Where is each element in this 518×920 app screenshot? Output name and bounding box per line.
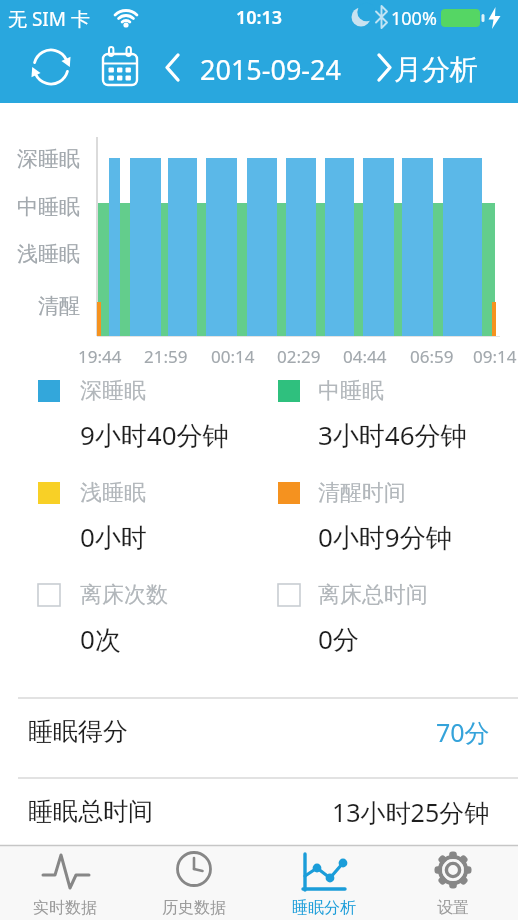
button[interactable] bbox=[130, 845, 260, 920]
staticText: 睡眠得分 bbox=[28, 716, 128, 747]
staticText: 离床总时间 bbox=[318, 581, 428, 609]
button[interactable]: 睡眠总时间 bbox=[0, 778, 518, 845]
button[interactable] bbox=[389, 845, 518, 920]
staticText: 浅睡眠 bbox=[80, 479, 146, 507]
staticText: 设置 bbox=[437, 898, 469, 918]
staticText: 100% bbox=[391, 6, 437, 31]
staticText: 0小时9分钟 bbox=[318, 519, 452, 555]
staticText: 清醒 bbox=[38, 293, 80, 319]
staticText: 02:29 bbox=[277, 345, 321, 368]
staticText: 浅睡眠 bbox=[17, 241, 80, 267]
staticText: 3小时46分钟 bbox=[318, 417, 467, 453]
staticText: 70分 bbox=[436, 715, 490, 749]
staticText: 历史数据 bbox=[162, 898, 226, 918]
staticText: 实时数据 bbox=[33, 898, 97, 918]
staticText: 深睡眠 bbox=[17, 146, 80, 172]
staticText: 06:59 bbox=[410, 345, 454, 368]
staticText: 9小时40分钟 bbox=[80, 417, 229, 453]
staticText: 2015-09-24 bbox=[200, 51, 341, 88]
button[interactable] bbox=[370, 46, 404, 90]
button[interactable] bbox=[28, 46, 72, 90]
staticText: 睡眠分析 bbox=[292, 898, 356, 918]
staticText: 04:44 bbox=[343, 345, 387, 368]
staticText: 离床次数 bbox=[80, 581, 168, 609]
staticText: 19:44 bbox=[78, 345, 122, 368]
staticText: 清醒时间 bbox=[318, 479, 406, 507]
button[interactable] bbox=[0, 845, 130, 920]
button[interactable] bbox=[259, 845, 389, 920]
staticText: 13小时25分钟 bbox=[332, 795, 490, 829]
staticText: 深睡眠 bbox=[80, 377, 146, 405]
button[interactable]: 睡眠得分 bbox=[0, 698, 518, 777]
staticText: 无 SIM 卡 bbox=[8, 6, 90, 32]
button[interactable] bbox=[196, 46, 362, 90]
staticText: 0分 bbox=[318, 621, 359, 657]
staticText: 21:59 bbox=[144, 345, 188, 368]
staticText: 中睡眠 bbox=[318, 377, 384, 405]
staticText: 0次 bbox=[80, 621, 121, 657]
staticText: 00:14 bbox=[211, 345, 255, 368]
staticText: 中睡眠 bbox=[17, 194, 80, 220]
staticText: 睡眠总时间 bbox=[28, 796, 153, 827]
staticText: 0小时 bbox=[80, 519, 147, 555]
button[interactable] bbox=[96, 46, 140, 90]
button[interactable] bbox=[392, 46, 488, 90]
staticText: 09:14 bbox=[473, 345, 517, 368]
staticText: 月分析 bbox=[394, 52, 478, 87]
staticText: 10:13 bbox=[236, 5, 283, 30]
button[interactable] bbox=[158, 46, 192, 90]
